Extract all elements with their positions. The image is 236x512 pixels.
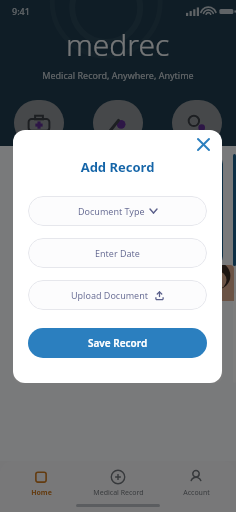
button[interactable]: Home bbox=[4, 467, 78, 500]
staticText: Dr. Lorem Ipsum bbox=[21, 300, 87, 311]
button[interactable]: Close bbox=[192, 133, 214, 155]
staticText: Save Record bbox=[88, 336, 148, 350]
staticText: Document Type bbox=[78, 205, 145, 217]
staticText: Book your appointment bbox=[131, 162, 189, 185]
staticText: Add Record bbox=[13, 158, 222, 176]
staticText: Top Doctors bbox=[13, 275, 77, 290]
staticText: B.Sc, MBBS, DDVL, MD- Dermatologist bbox=[21, 316, 97, 336]
button[interactable]: Account bbox=[159, 467, 233, 500]
button[interactable]: Upload Document bbox=[28, 280, 207, 310]
button[interactable]: Book your appointment bbox=[123, 154, 223, 266]
staticText: Account bbox=[183, 488, 210, 498]
button[interactable]: Save Record bbox=[28, 328, 207, 358]
staticText: Dr. Lorum Ipsum bbox=[131, 300, 197, 311]
staticText: 9:41 bbox=[12, 5, 30, 17]
button[interactable]: Dr. Lorem Ipsum bbox=[13, 293, 113, 383]
button[interactable]: Service 3 bbox=[172, 100, 222, 146]
button[interactable]: Service 1 bbox=[14, 100, 64, 146]
button[interactable]: Enter Date bbox=[28, 238, 207, 268]
button[interactable]: Book your appointment bbox=[13, 154, 113, 266]
button[interactable]: Service 2 bbox=[93, 100, 143, 146]
button[interactable]: Book your appointment bbox=[233, 154, 236, 266]
staticText: Medical Record bbox=[93, 488, 144, 498]
staticText: Home bbox=[31, 488, 52, 498]
button[interactable]: Medical Record bbox=[81, 467, 155, 500]
staticText: Enter Date bbox=[95, 247, 140, 259]
staticText: Medical Record, Anywhere, Anytime bbox=[42, 69, 194, 81]
staticText: medrec bbox=[66, 24, 170, 65]
button[interactable]: Dr. Lorum Ipsum bbox=[123, 293, 223, 383]
staticText: Upload Document bbox=[71, 289, 149, 301]
button[interactable]: Document Type bbox=[28, 196, 207, 226]
button[interactable]: Dr. Lorum Ipsum bbox=[233, 293, 236, 383]
